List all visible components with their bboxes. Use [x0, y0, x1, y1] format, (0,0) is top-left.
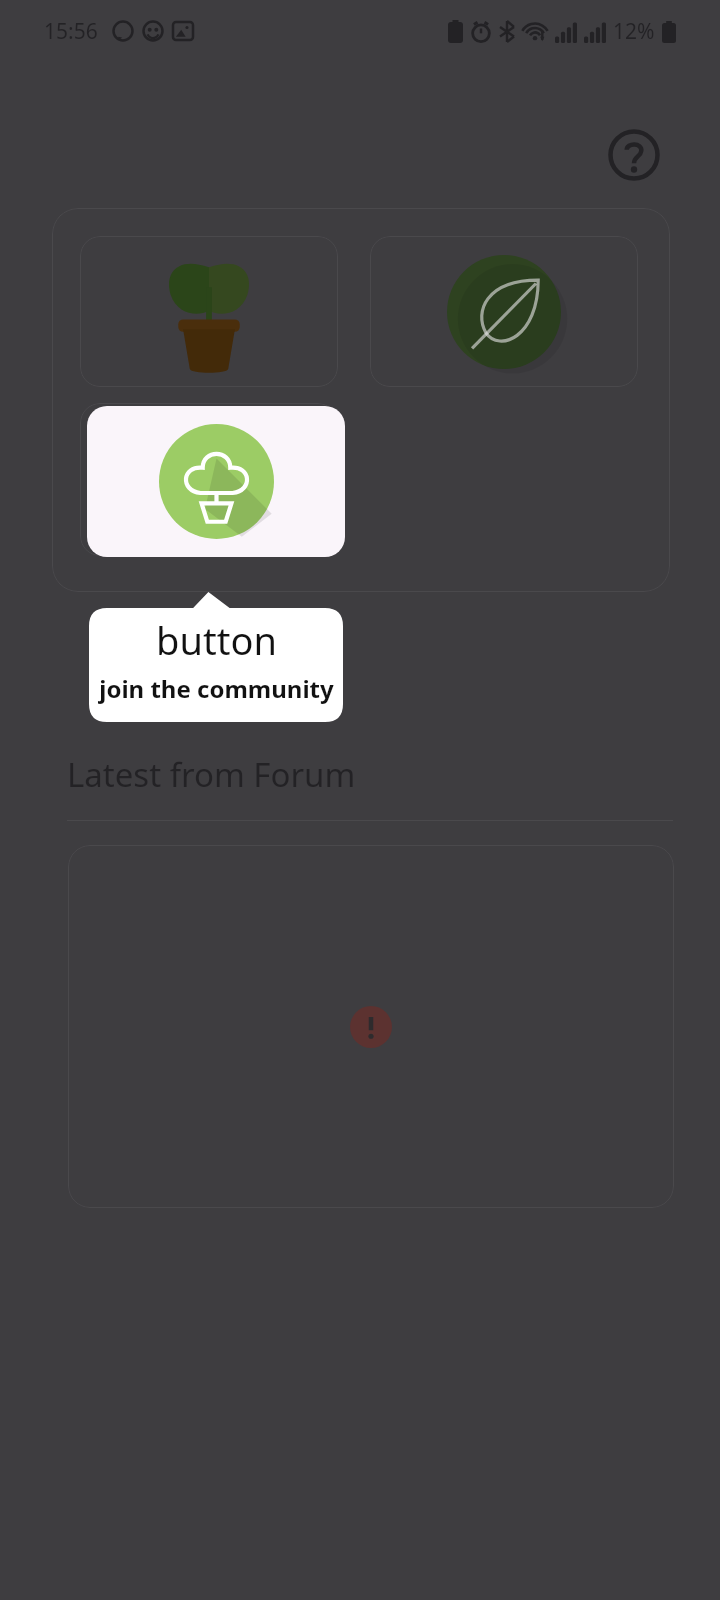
staticText: button [156, 614, 277, 666]
staticText: 15:56 [44, 17, 98, 46]
button[interactable]: Community [87, 406, 345, 557]
staticText: Latest from Forum [67, 752, 356, 797]
staticText: 12% [613, 17, 655, 46]
button[interactable]: Identify plant [370, 236, 638, 387]
staticText: join the community [99, 672, 334, 705]
button[interactable]: My plants [80, 236, 338, 387]
button[interactable]: Help [607, 128, 661, 182]
